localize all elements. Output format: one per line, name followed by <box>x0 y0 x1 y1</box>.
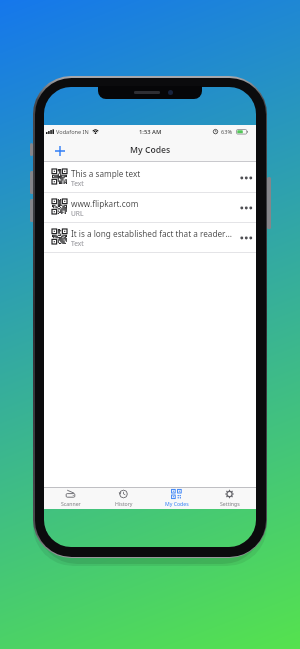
button[interactable]: My Codes <box>150 487 203 508</box>
staticText: Vodafone IN <box>56 128 89 136</box>
staticText: URL <box>71 209 84 218</box>
staticText: Text <box>71 179 84 188</box>
staticText: Scanner <box>61 500 81 507</box>
button[interactable]: Scanner <box>44 487 97 508</box>
button[interactable]: It is a long established fact that a rea… <box>44 222 256 252</box>
staticText: History <box>115 500 133 507</box>
staticText: www.flipkart.com <box>71 198 234 209</box>
button[interactable]: History <box>97 487 150 508</box>
staticText: 63% <box>221 128 233 136</box>
button[interactable]: Settings <box>203 487 256 508</box>
staticText: My Codes <box>165 500 189 507</box>
button[interactable] <box>52 143 67 158</box>
staticText: 1:53 AM <box>139 128 162 136</box>
staticText: My Codes <box>130 144 171 156</box>
staticText: This a sample text <box>71 168 234 179</box>
staticText: It is a long established fact that a rea… <box>71 228 234 239</box>
staticText: Settings <box>220 500 240 507</box>
button[interactable]: This a sample text <box>44 162 256 192</box>
staticText: Text <box>71 239 84 248</box>
button[interactable]: www.flipkart.com <box>44 192 256 222</box>
